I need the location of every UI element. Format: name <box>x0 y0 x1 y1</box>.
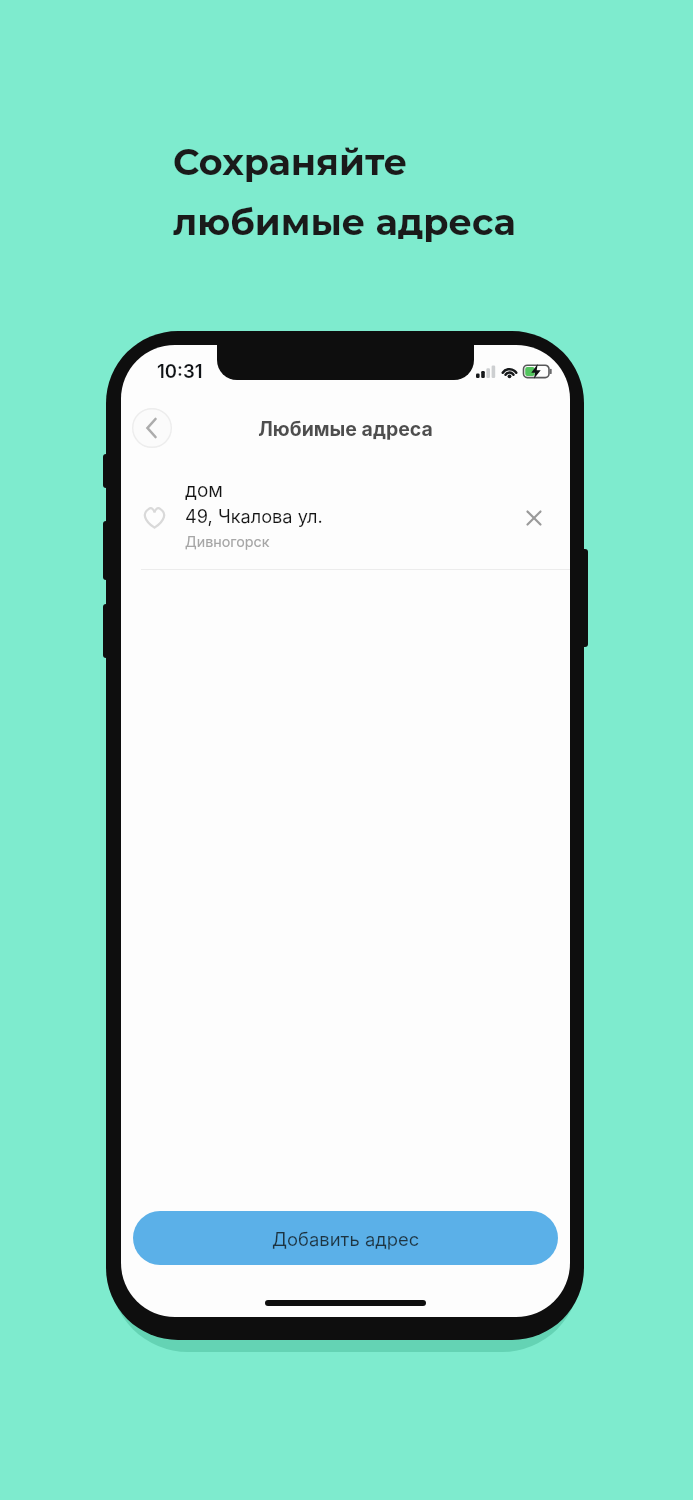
button[interactable]: Добавить адрес <box>133 1211 558 1265</box>
button[interactable] <box>135 475 576 553</box>
staticText: любимые адреса <box>173 200 516 244</box>
button[interactable] <box>527 511 541 525</box>
staticText: 49, Чкалова ул. <box>185 505 323 527</box>
staticText: Дивногорск <box>185 533 270 550</box>
staticText: 10:31 <box>157 360 203 382</box>
staticText: Сохраняйте <box>173 140 408 184</box>
staticText: Добавить адрес <box>272 1228 420 1250</box>
button[interactable] <box>132 408 172 448</box>
staticText: Любимые адреса <box>121 417 570 441</box>
staticText: дом <box>185 479 223 502</box>
